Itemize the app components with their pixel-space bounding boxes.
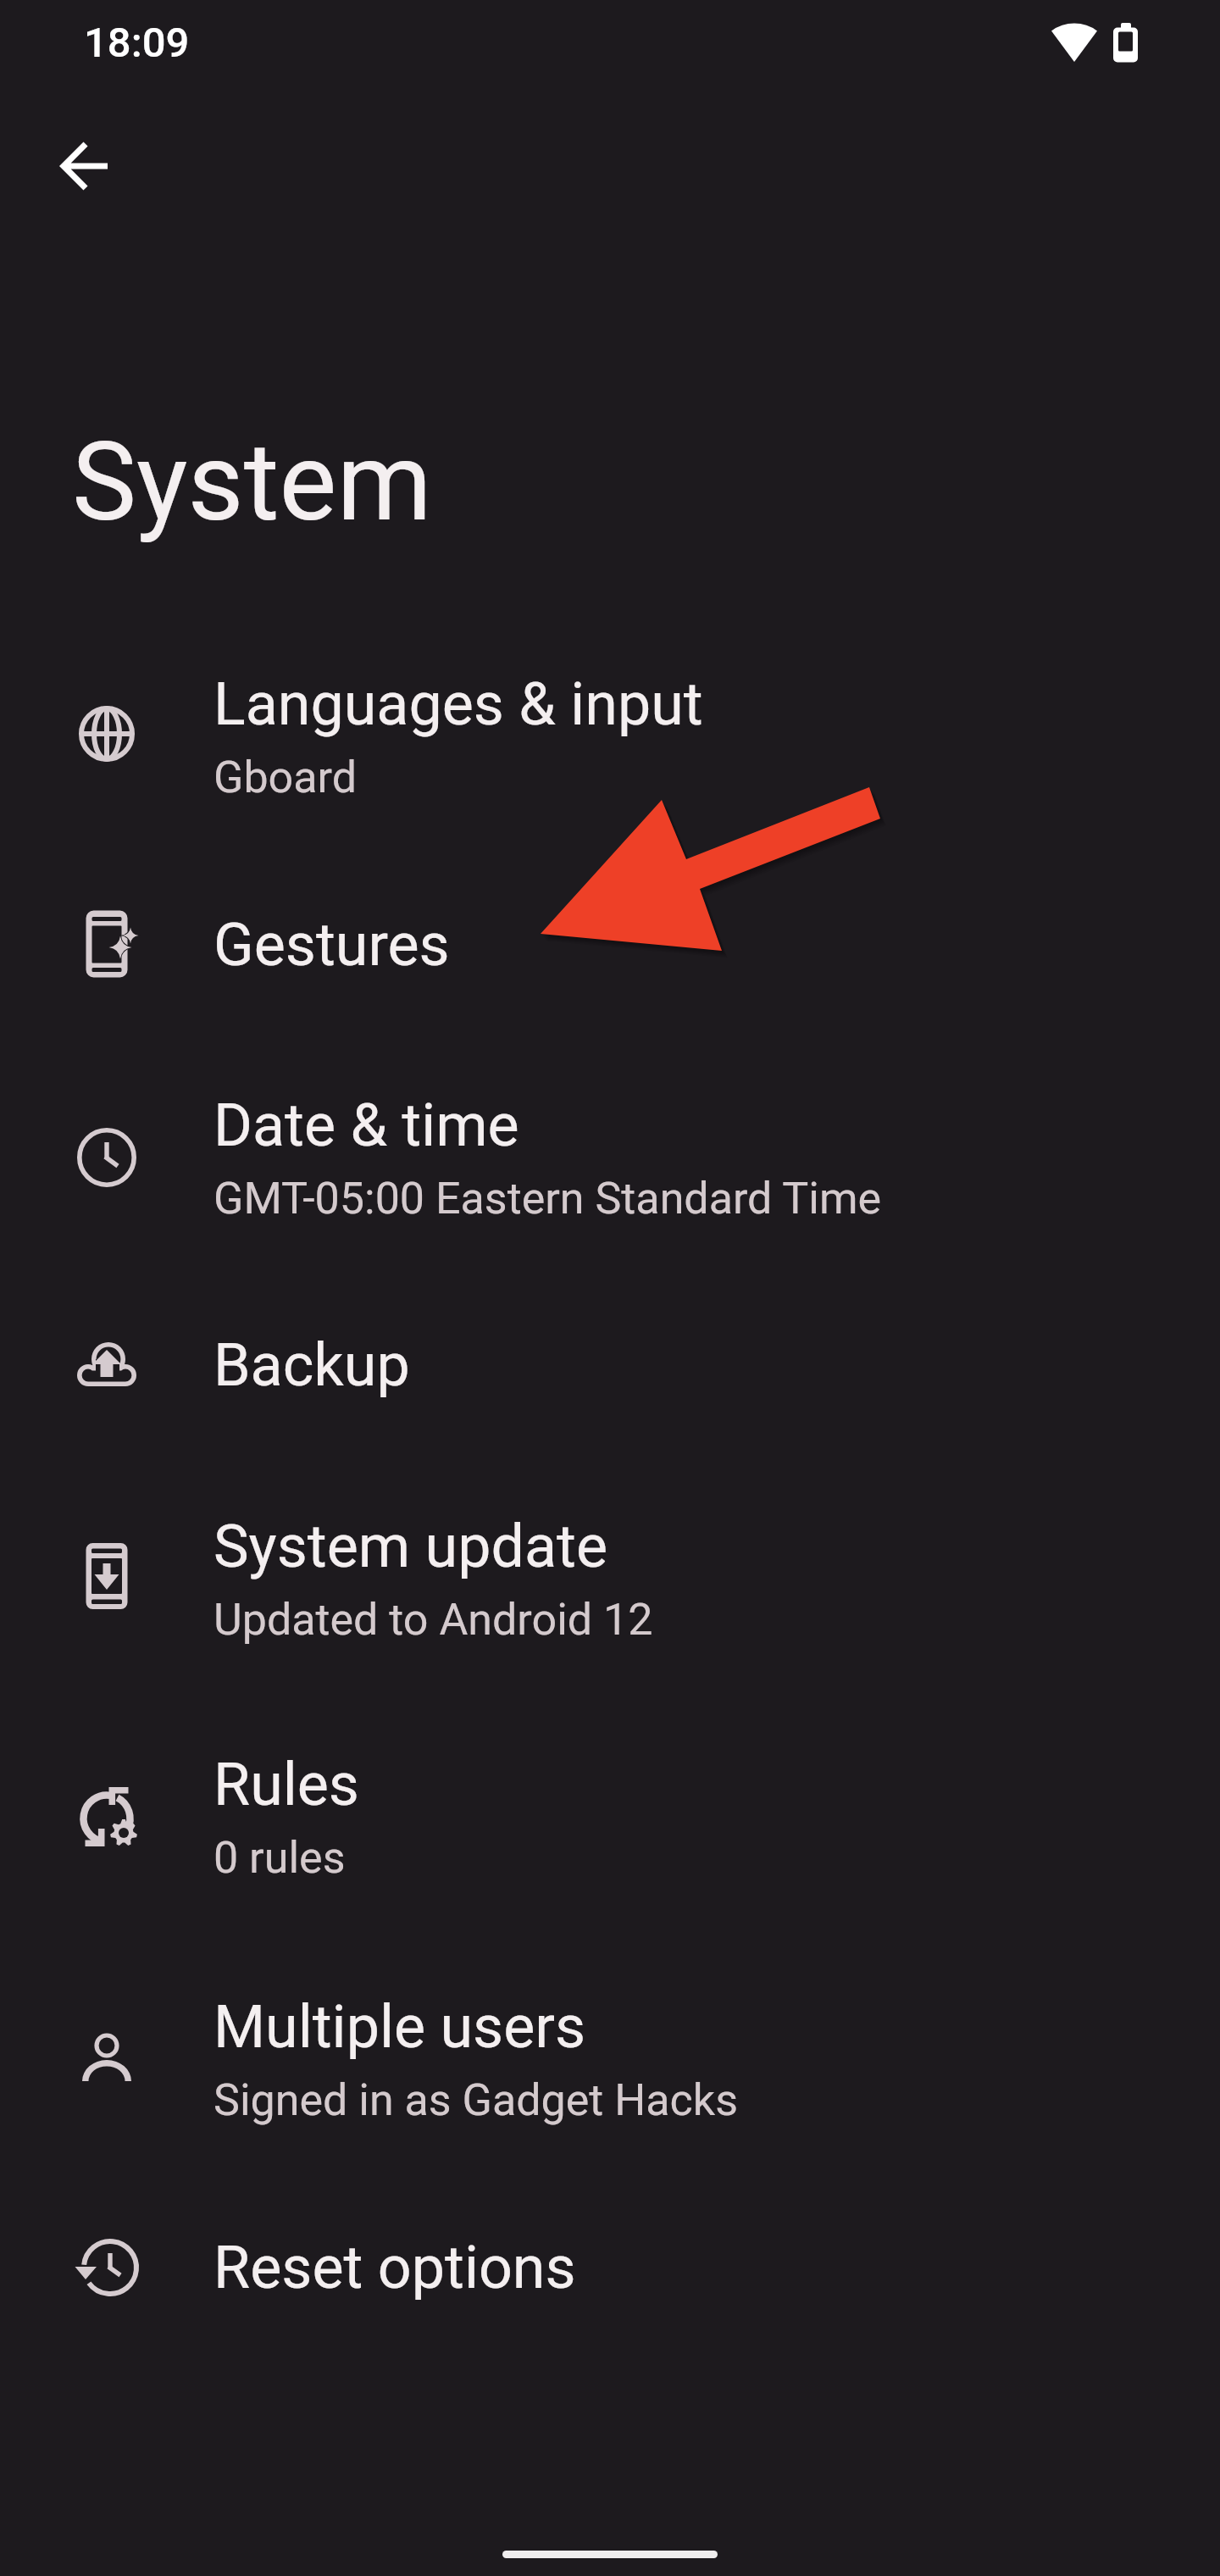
staticText: Backup <box>213 1330 410 1400</box>
staticText: Reset options <box>213 2233 576 2302</box>
button[interactable]: Date & time <box>0 1037 1220 1278</box>
staticText: System update <box>213 1512 608 1581</box>
button[interactable]: System update <box>0 1458 1220 1699</box>
staticText: 18:09 <box>84 19 190 67</box>
button[interactable]: Rules <box>0 1696 1220 1937</box>
staticText: 0 rules <box>213 1832 346 1884</box>
staticText: Gestures <box>213 910 450 980</box>
staticText: Signed in as Gadget Hacks <box>213 2074 739 2126</box>
staticText: Multiple users <box>213 1992 586 2062</box>
button[interactable]: Reset options <box>0 2177 1220 2357</box>
staticText: System <box>72 419 432 546</box>
button[interactable]: Languages & input <box>0 616 1220 857</box>
staticText: Rules <box>213 1750 359 1819</box>
button[interactable]: Gestures <box>0 854 1220 1035</box>
staticText: Updated to Android 12 <box>213 1594 653 1646</box>
staticText: Languages & input <box>213 669 703 739</box>
button[interactable]: Backup <box>0 1274 1220 1455</box>
staticText: GMT-05:00 Eastern Standard Time <box>213 1173 882 1224</box>
button[interactable]: Navigate up <box>24 114 129 219</box>
button[interactable]: Multiple users <box>0 1939 1220 2179</box>
staticText: Gboard <box>213 752 358 803</box>
staticText: Date & time <box>213 1091 519 1160</box>
